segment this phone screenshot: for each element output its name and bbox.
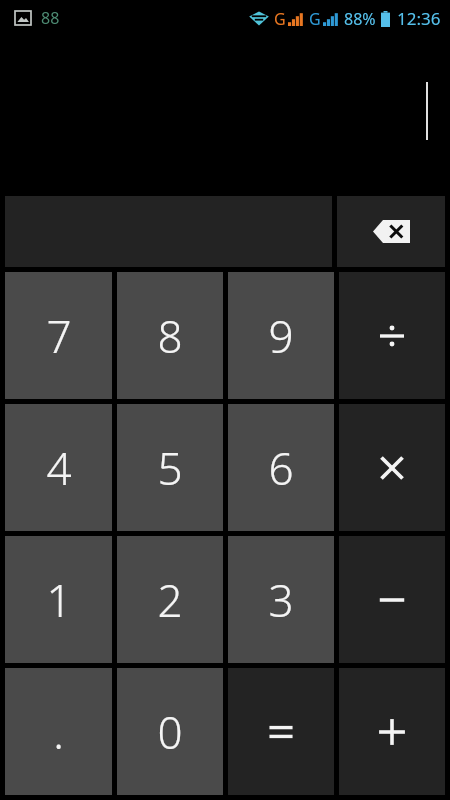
staticText: 88% — [344, 8, 376, 30]
staticText: 88 — [41, 7, 60, 29]
button[interactable]: 7 — [5, 272, 112, 399]
button[interactable]: plus — [339, 668, 445, 795]
staticText: 0 — [157, 702, 183, 762]
button[interactable]: multiply — [339, 404, 445, 531]
button[interactable]: minus — [339, 536, 445, 663]
button[interactable]: 5 — [117, 404, 223, 531]
button[interactable]: 6 — [228, 404, 334, 531]
button[interactable]: 4 — [5, 404, 112, 531]
button[interactable]: 2 — [117, 536, 223, 663]
button[interactable]: 8 — [117, 272, 223, 399]
staticText: 1 — [46, 570, 72, 630]
button[interactable]: equals — [228, 668, 334, 795]
staticText: G — [274, 8, 286, 30]
button[interactable]: 1 — [5, 536, 112, 663]
button[interactable]: Backspace — [337, 196, 445, 267]
staticText: 3 — [268, 570, 294, 630]
button[interactable]: 0 — [117, 668, 223, 795]
staticText: 7 — [46, 306, 72, 366]
button[interactable]: Calculator display — [0, 36, 450, 191]
staticText: 12:36 — [397, 7, 441, 30]
staticText: 5 — [157, 438, 183, 498]
button[interactable]: . — [5, 668, 112, 795]
staticText: 8 — [157, 306, 183, 366]
button[interactable]: divide — [339, 272, 445, 399]
staticText: 2 — [157, 570, 183, 630]
staticText: 4 — [46, 438, 72, 498]
staticText: . — [53, 702, 64, 762]
staticText: 6 — [268, 438, 294, 498]
button[interactable]: 3 — [228, 536, 334, 663]
button[interactable]: 9 — [228, 272, 334, 399]
staticText: G — [309, 8, 321, 30]
staticText: 9 — [268, 306, 294, 366]
